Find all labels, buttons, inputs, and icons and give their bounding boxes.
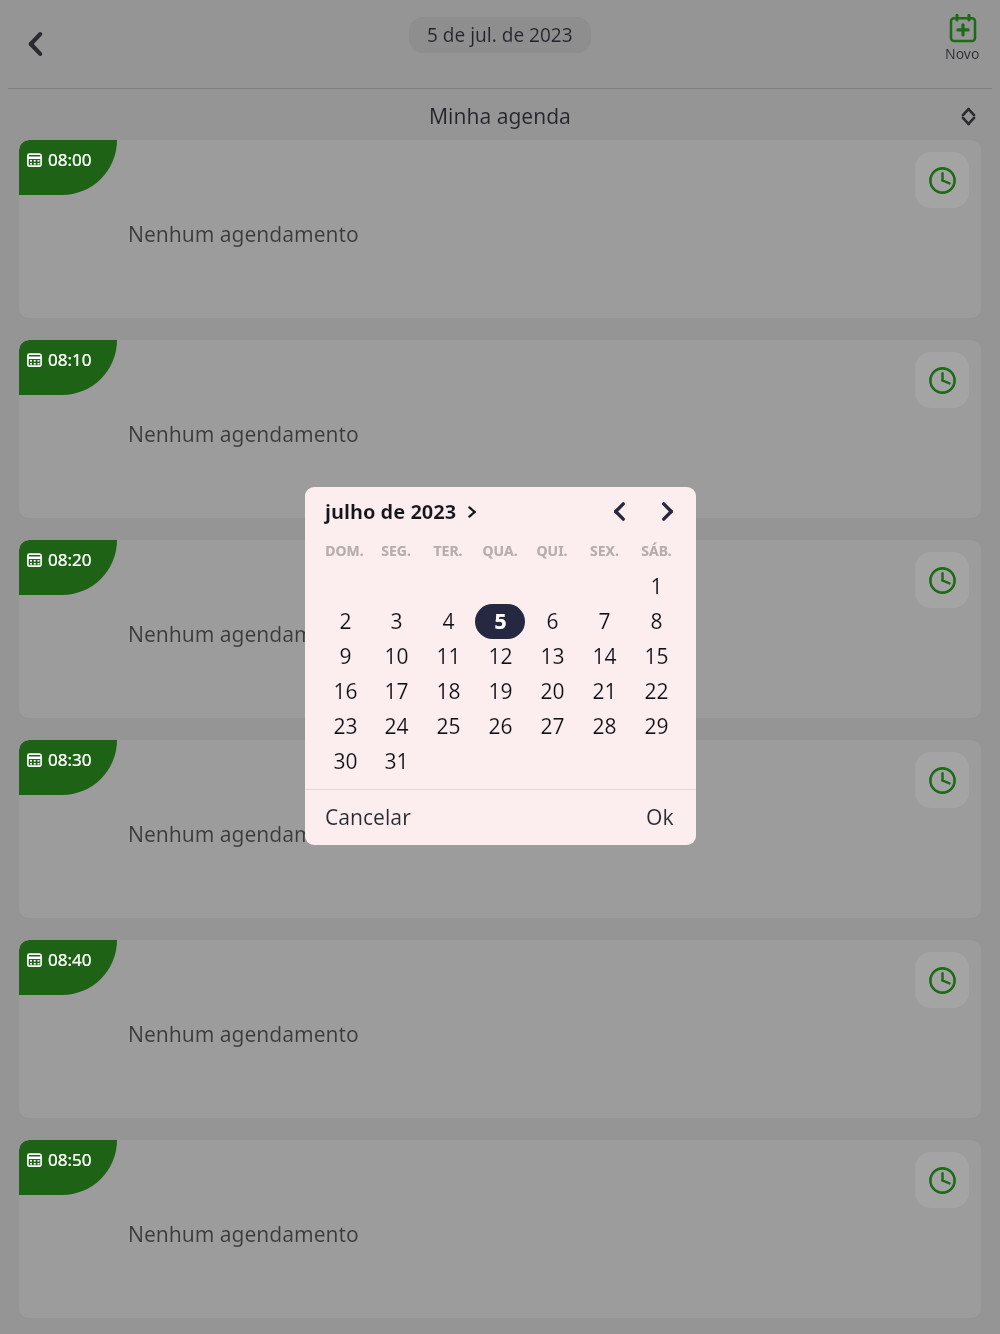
- staticText: 30: [333, 747, 358, 776]
- button[interactable]: 11: [423, 639, 473, 674]
- button[interactable]: 15: [631, 639, 681, 674]
- staticText: 25: [436, 712, 461, 741]
- button[interactable]: Cancelar: [315, 797, 421, 838]
- button[interactable]: 18: [423, 674, 473, 709]
- button[interactable]: 08:50: [19, 1140, 981, 1318]
- staticText: QUA.: [482, 541, 518, 560]
- staticText: 23: [333, 712, 358, 741]
- staticText: Ok: [646, 803, 674, 832]
- button[interactable]: 22: [631, 674, 681, 709]
- staticText: Nenhum agendamento: [128, 820, 359, 849]
- button[interactable]: 21: [579, 674, 629, 709]
- button[interactable]: 12: [475, 639, 525, 674]
- button[interactable]: Mês anterior: [602, 494, 636, 528]
- staticText: 17: [384, 677, 409, 706]
- button[interactable]: 6: [527, 604, 577, 639]
- button[interactable]: 8: [631, 604, 681, 639]
- staticText: Nenhum agendamento: [128, 1220, 359, 1249]
- staticText: SEG.: [381, 541, 411, 560]
- staticText: TER.: [433, 541, 463, 560]
- staticText: Nenhum agendamento: [128, 220, 359, 249]
- staticText: 29: [644, 712, 669, 741]
- staticText: 22: [644, 677, 669, 706]
- staticText: 08:10: [48, 348, 92, 371]
- staticText: 1: [650, 572, 663, 601]
- staticText: 11: [436, 642, 461, 671]
- staticText: 08:30: [48, 748, 92, 771]
- button[interactable]: 08:10: [19, 340, 981, 518]
- staticText: 13: [540, 642, 565, 671]
- button[interactable]: Horário: [915, 1152, 969, 1208]
- staticText: 27: [540, 712, 565, 741]
- button[interactable]: 08:30: [19, 740, 981, 918]
- button[interactable]: 10: [371, 639, 421, 674]
- staticText: 7: [598, 607, 611, 636]
- staticText: 2: [339, 607, 352, 636]
- button[interactable]: 1: [631, 569, 681, 604]
- button[interactable]: julho de 2023: [325, 498, 478, 525]
- staticText: 24: [384, 712, 409, 741]
- button[interactable]: Horário: [915, 152, 969, 208]
- button[interactable]: Novo: [941, 12, 984, 65]
- staticText: DOM.: [325, 541, 364, 560]
- button[interactable]: 08:00: [19, 140, 981, 318]
- button[interactable]: 29: [631, 709, 681, 744]
- button[interactable]: 30: [320, 744, 370, 779]
- staticText: 5: [494, 607, 507, 636]
- staticText: 21: [592, 677, 617, 706]
- staticText: 08:50: [48, 1148, 92, 1171]
- staticText: 8: [650, 607, 663, 636]
- button[interactable]: 3: [371, 604, 421, 639]
- button[interactable]: Ordenar: [946, 94, 990, 138]
- button[interactable]: 23: [320, 709, 370, 744]
- staticText: SÁB.: [641, 541, 672, 560]
- staticText: 28: [592, 712, 617, 741]
- staticText: 4: [442, 607, 455, 636]
- button[interactable]: 14: [579, 639, 629, 674]
- staticText: SEX.: [590, 541, 619, 560]
- button[interactable]: 17: [371, 674, 421, 709]
- button[interactable]: 27: [527, 709, 577, 744]
- staticText: 31: [384, 747, 409, 776]
- button[interactable]: Horário: [915, 352, 969, 408]
- button[interactable]: Próximo mês: [650, 494, 684, 528]
- button[interactable]: 5 de jul. de 2023: [409, 17, 591, 53]
- button[interactable]: 4: [423, 604, 473, 639]
- button[interactable]: Voltar: [8, 16, 64, 72]
- button[interactable]: 24: [371, 709, 421, 744]
- button[interactable]: 08:40: [19, 940, 981, 1118]
- staticText: 6: [546, 607, 559, 636]
- staticText: 08:20: [48, 548, 92, 571]
- staticText: 10: [384, 642, 409, 671]
- button[interactable]: Ok: [636, 797, 684, 838]
- button[interactable]: 16: [320, 674, 370, 709]
- button[interactable]: 13: [527, 639, 577, 674]
- staticText: QUI.: [536, 541, 568, 560]
- staticText: Nenhum agendamento: [128, 420, 359, 449]
- staticText: 15: [644, 642, 669, 671]
- button[interactable]: 19: [475, 674, 525, 709]
- button[interactable]: 7: [579, 604, 629, 639]
- button[interactable]: Horário: [915, 752, 969, 808]
- button[interactable]: 5: [475, 604, 525, 639]
- button[interactable]: Horário: [915, 552, 969, 608]
- staticText: 18: [436, 677, 461, 706]
- staticText: 08:40: [48, 948, 92, 971]
- staticText: Cancelar: [325, 803, 411, 832]
- button[interactable]: 26: [475, 709, 525, 744]
- button[interactable]: 28: [579, 709, 629, 744]
- staticText: 19: [488, 677, 513, 706]
- button[interactable]: 9: [320, 639, 370, 674]
- button[interactable]: Horário: [915, 952, 969, 1008]
- staticText: 26: [488, 712, 513, 741]
- button[interactable]: 2: [320, 604, 370, 639]
- staticText: 08:00: [48, 148, 92, 171]
- staticText: 5 de jul. de 2023: [427, 22, 573, 48]
- button[interactable]: 08:20: [19, 540, 981, 718]
- staticText: 9: [339, 642, 352, 671]
- button[interactable]: 31: [371, 744, 421, 779]
- staticText: 3: [390, 607, 403, 636]
- button[interactable]: 25: [423, 709, 473, 744]
- button[interactable]: 20: [527, 674, 577, 709]
- staticText: Nenhum agendamento: [128, 620, 359, 649]
